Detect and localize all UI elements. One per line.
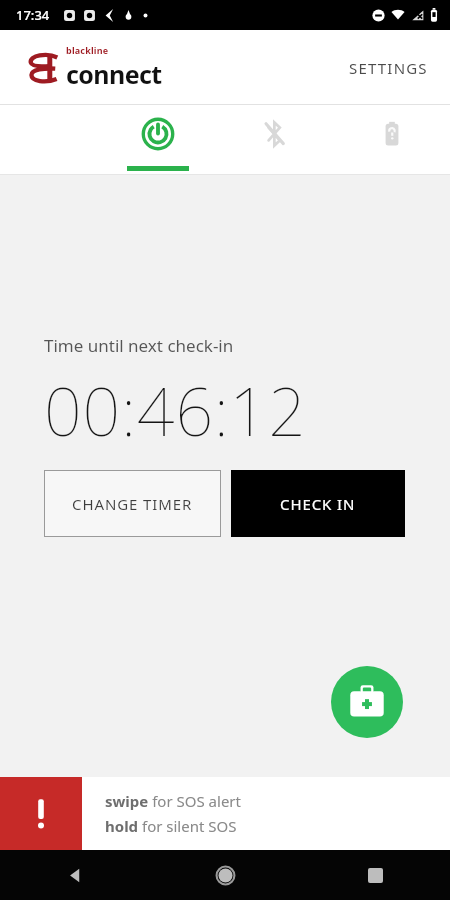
button[interactable]: Recents	[300, 850, 450, 900]
button[interactable]: Home	[150, 850, 300, 900]
staticText: connect	[66, 57, 162, 91]
button[interactable]: Medical alert	[331, 666, 403, 738]
staticText: 00:46:12	[44, 365, 307, 455]
staticText: Time until next check-in	[44, 334, 234, 357]
button[interactable]: Status	[99, 105, 216, 175]
button[interactable]: CHECK IN	[231, 470, 405, 537]
button[interactable]: Battery unknown	[333, 105, 450, 175]
staticText: hold for silent SOS	[105, 816, 237, 836]
button[interactable]: CHANGE TIMER	[44, 470, 221, 537]
button[interactable]: Back	[0, 850, 150, 900]
staticText: swipe for SOS alert	[105, 791, 241, 811]
staticText: 17:34	[16, 6, 50, 24]
staticText: blackline	[66, 44, 109, 56]
button[interactable]: SETTINGS	[327, 44, 450, 92]
staticText: CHECK IN	[280, 494, 356, 514]
button[interactable]: swipe for SOS alert	[0, 777, 450, 850]
staticText: SETTINGS	[349, 58, 428, 78]
button[interactable]: Bluetooth off	[216, 105, 333, 175]
staticText: CHANGE TIMER	[72, 494, 193, 514]
